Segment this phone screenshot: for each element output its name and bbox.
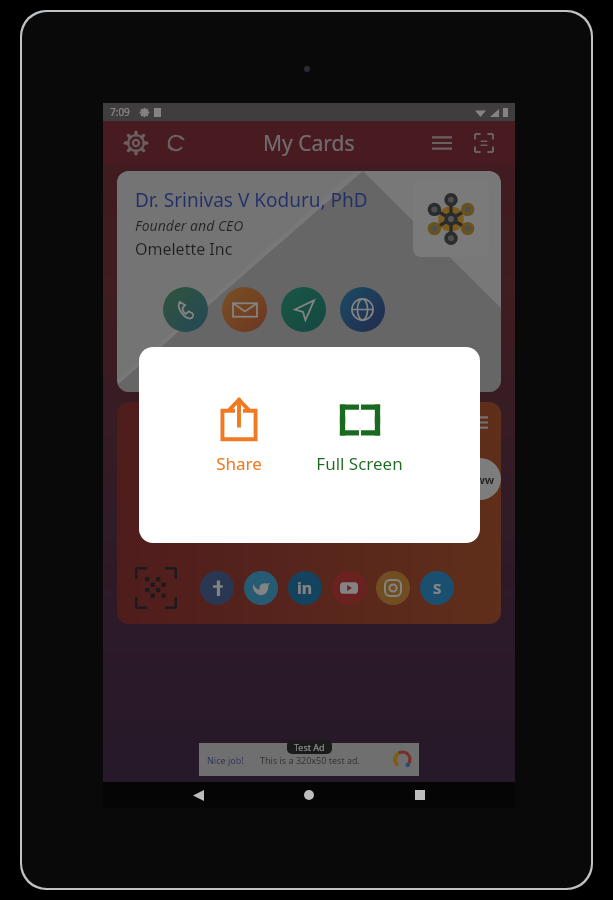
staticText: This is a 320x50 test ad.: [260, 754, 360, 766]
staticText: www: [466, 472, 495, 487]
button[interactable]: Social link: [288, 571, 322, 605]
button[interactable]: Social link: [376, 571, 410, 605]
staticText: Dr. Srinivas V Koduru, PhD: [135, 187, 368, 213]
staticText: Omelette Inc: [135, 238, 233, 260]
button[interactable]: Scan QR code: [467, 126, 501, 160]
button[interactable]: Social link: [332, 571, 366, 605]
button[interactable]: Social link: [244, 571, 278, 605]
staticText: 7:09: [110, 105, 130, 119]
button[interactable]: Nice job!: [199, 743, 419, 776]
button[interactable]: Social link: [420, 571, 454, 605]
button[interactable]: Company logo: [413, 181, 489, 257]
button[interactable]: Recent apps: [404, 782, 436, 808]
button[interactable]: Home: [293, 782, 325, 808]
button[interactable]: Contact action: [222, 287, 267, 332]
staticText: S: [433, 578, 442, 598]
button[interactable]: Refresh: [159, 126, 193, 160]
staticText: Full Screen: [316, 452, 403, 475]
button[interactable]: Contact action: [163, 287, 208, 332]
staticText: in: [297, 577, 313, 599]
button[interactable]: Contact action: [351, 458, 393, 500]
button[interactable]: Full Screen: [306, 391, 413, 481]
button[interactable]: Card menu: [117, 402, 501, 624]
button[interactable]: Dr. Srinivas V Koduru, PhD: [117, 171, 501, 392]
button[interactable]: Card menu: [465, 408, 493, 436]
button[interactable]: Contact action: [281, 287, 326, 332]
staticText: My Cards: [263, 129, 355, 158]
button[interactable]: Settings: [119, 126, 153, 160]
staticText: Test Ad: [294, 741, 325, 753]
staticText: Nice job!: [207, 754, 244, 766]
button[interactable]: Back: [182, 782, 214, 808]
staticText: Share: [216, 452, 262, 475]
button[interactable]: Menu: [425, 126, 459, 160]
button[interactable]: Contact action: [297, 458, 339, 500]
button[interactable]: Contact action: [340, 287, 385, 332]
button[interactable]: Share: [206, 391, 272, 481]
button[interactable]: QR code: [133, 565, 178, 610]
button[interactable]: Contact action: [459, 458, 501, 500]
button[interactable]: Social link: [200, 571, 234, 605]
staticText: Founder and CEO: [135, 216, 244, 235]
